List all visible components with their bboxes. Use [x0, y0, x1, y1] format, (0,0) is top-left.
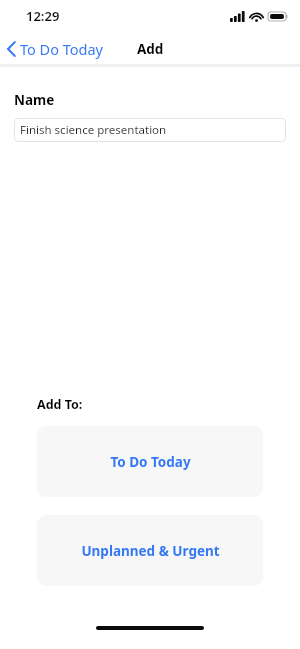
staticText: To Do Today [20, 39, 103, 59]
staticText: Add To: [37, 396, 83, 413]
button[interactable]: Finish science presentation [14, 118, 286, 142]
button[interactable]: To Do Today [0, 35, 113, 63]
staticText: To Do Today [110, 453, 191, 471]
button[interactable]: Unplanned & Urgent [37, 515, 263, 586]
staticText: Finish science presentation [20, 122, 167, 138]
staticText: 12:29 [26, 7, 60, 25]
button[interactable]: To Do Today [37, 426, 263, 497]
staticText: Name [14, 91, 55, 109]
staticText: Add [137, 40, 164, 58]
staticText: Unplanned & Urgent [81, 542, 220, 560]
